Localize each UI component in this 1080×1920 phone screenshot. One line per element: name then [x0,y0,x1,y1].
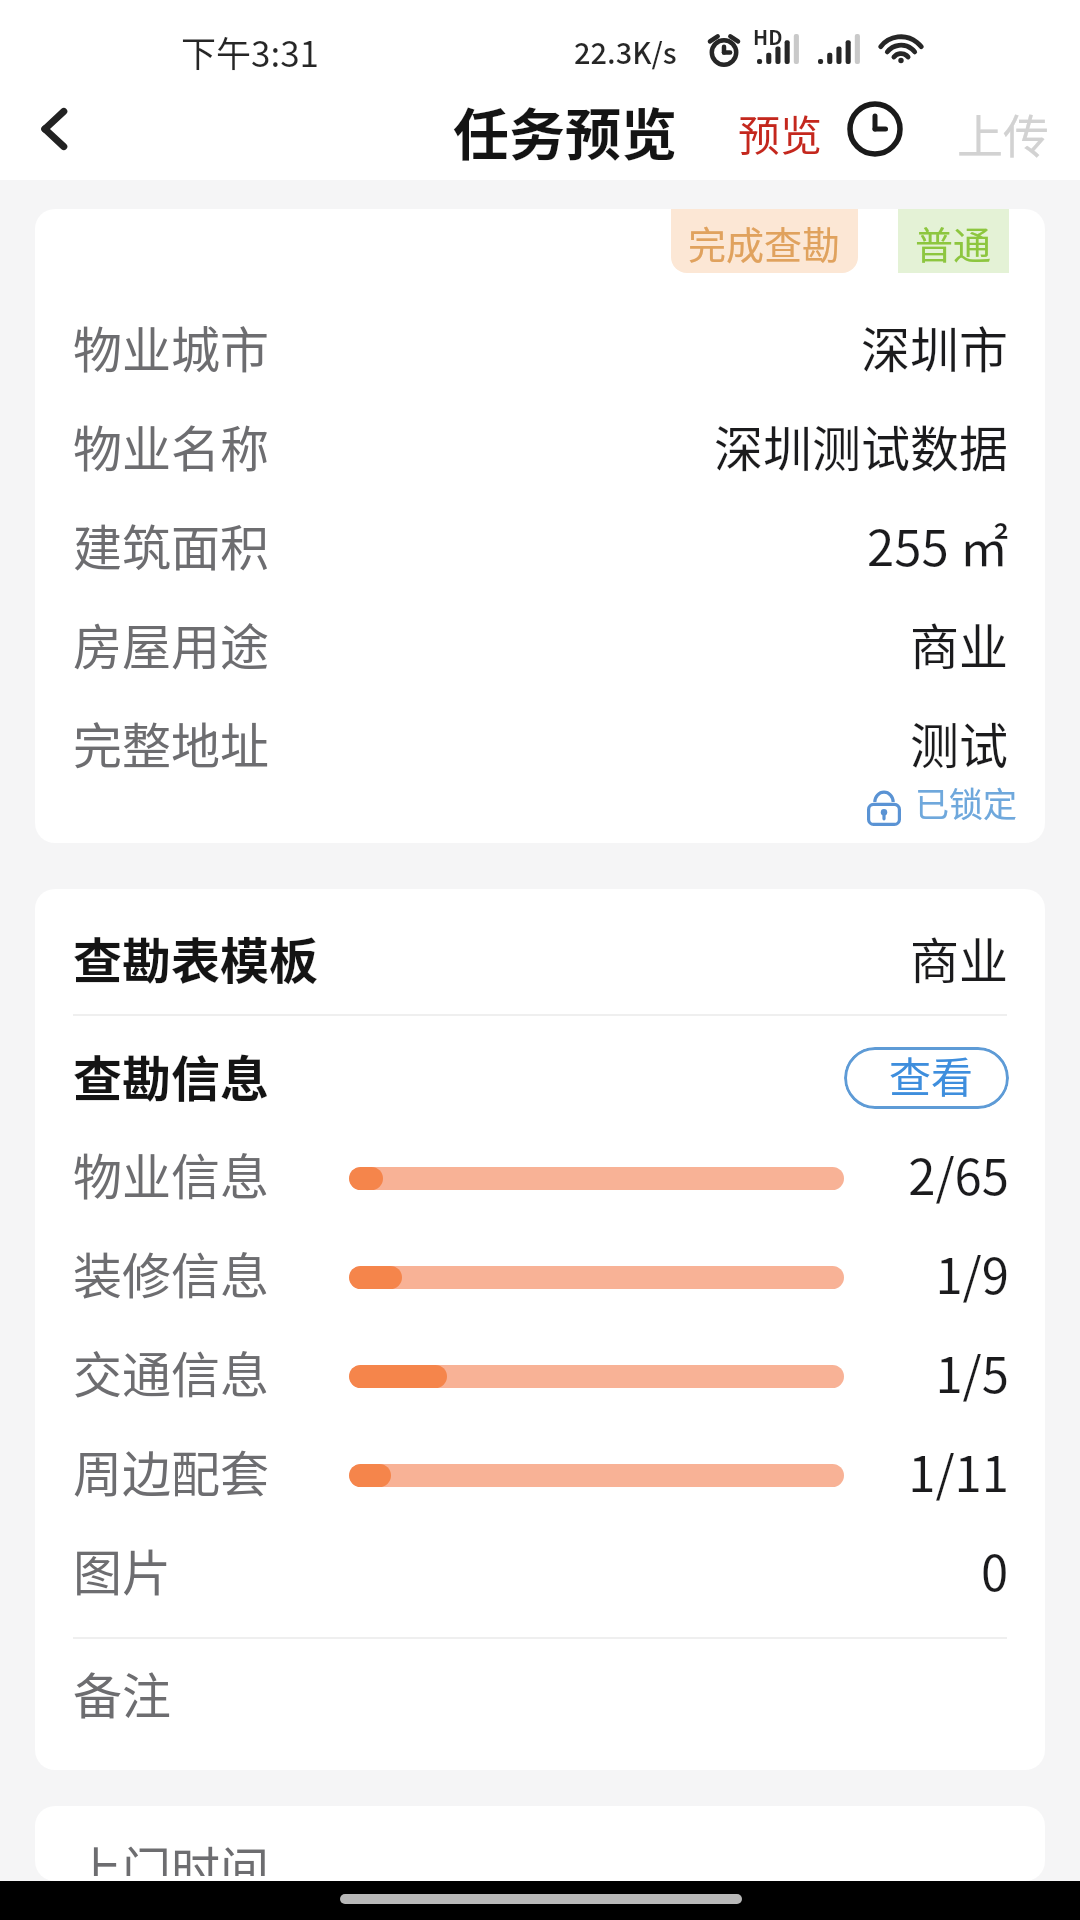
staticText: 商业 [910,608,1009,679]
staticText: 物业城市 [73,311,270,382]
button[interactable]: 查勘表模板 [35,889,1045,1014]
staticText: 上门时间 [73,1831,270,1876]
staticText: 查勘表模板 [73,922,319,993]
staticText: 测试 [910,707,1009,778]
staticText: 装修信息 [73,1237,270,1308]
button[interactable]: 备注 [35,1639,1045,1770]
staticText: 图片 [73,1534,172,1605]
staticText: 交通信息 [73,1336,270,1407]
staticText: 物业信息 [73,1138,270,1209]
button[interactable]: 普通 [898,209,1009,273]
staticText: 周边配套 [73,1435,270,1506]
staticText: 商业 [910,922,1009,993]
staticText: 2/65 [844,1138,1009,1209]
staticText: 深圳市 [861,311,1009,382]
staticText: 备注 [73,1657,172,1728]
button[interactable]: 物业城市 [35,302,1045,401]
staticText: 1/9 [844,1237,1009,1308]
button[interactable]: Back [17,91,93,167]
staticText: 下午3:31 [181,26,320,77]
button[interactable]: 预览 [730,94,831,171]
button[interactable]: 物业名称 [35,401,1045,500]
staticText: HD [753,22,783,51]
button[interactable]: 已锁定 [35,785,1045,831]
staticText: 房屋用途 [73,608,270,679]
button[interactable]: 建筑面积 [35,500,1045,599]
staticText: 建筑面积 [73,509,270,580]
staticText: 查看 [889,1047,974,1105]
staticText: 上传 [957,100,1049,167]
staticText: 普通 [915,215,992,270]
button[interactable]: 上传 [951,92,1055,175]
button[interactable]: 完成查勘 [671,209,858,273]
staticText: 1/11 [844,1435,1009,1506]
button[interactable]: 交通信息 [35,1327,1045,1426]
staticText: 0 [981,1534,1009,1605]
staticText: 完成查勘 [688,215,841,270]
staticText: 1/5 [844,1336,1009,1407]
button[interactable]: History [838,92,912,166]
staticText: 物业名称 [73,410,270,481]
button[interactable]: 周边配套 [35,1426,1045,1525]
button[interactable]: 完整地址 [35,698,1045,797]
staticText: 深圳测试数据 [714,410,1009,481]
staticText: 预览 [738,102,823,163]
staticText: 查勘信息 [73,1040,270,1111]
button[interactable]: 查看 [844,1047,1009,1109]
button[interactable]: 装修信息 [35,1228,1045,1327]
staticText: 22.3K/s [574,30,677,72]
staticText: 255 ㎡ [867,509,1009,580]
button[interactable]: 图片 [35,1525,1045,1624]
staticText: 已锁定 [915,778,1017,824]
button[interactable]: 物业信息 [35,1129,1045,1228]
button[interactable]: 房屋用途 [35,599,1045,698]
staticText: 完整地址 [73,707,270,778]
button[interactable]: 上门时间 [35,1806,1045,1881]
staticText: 任务预览 [453,90,677,171]
